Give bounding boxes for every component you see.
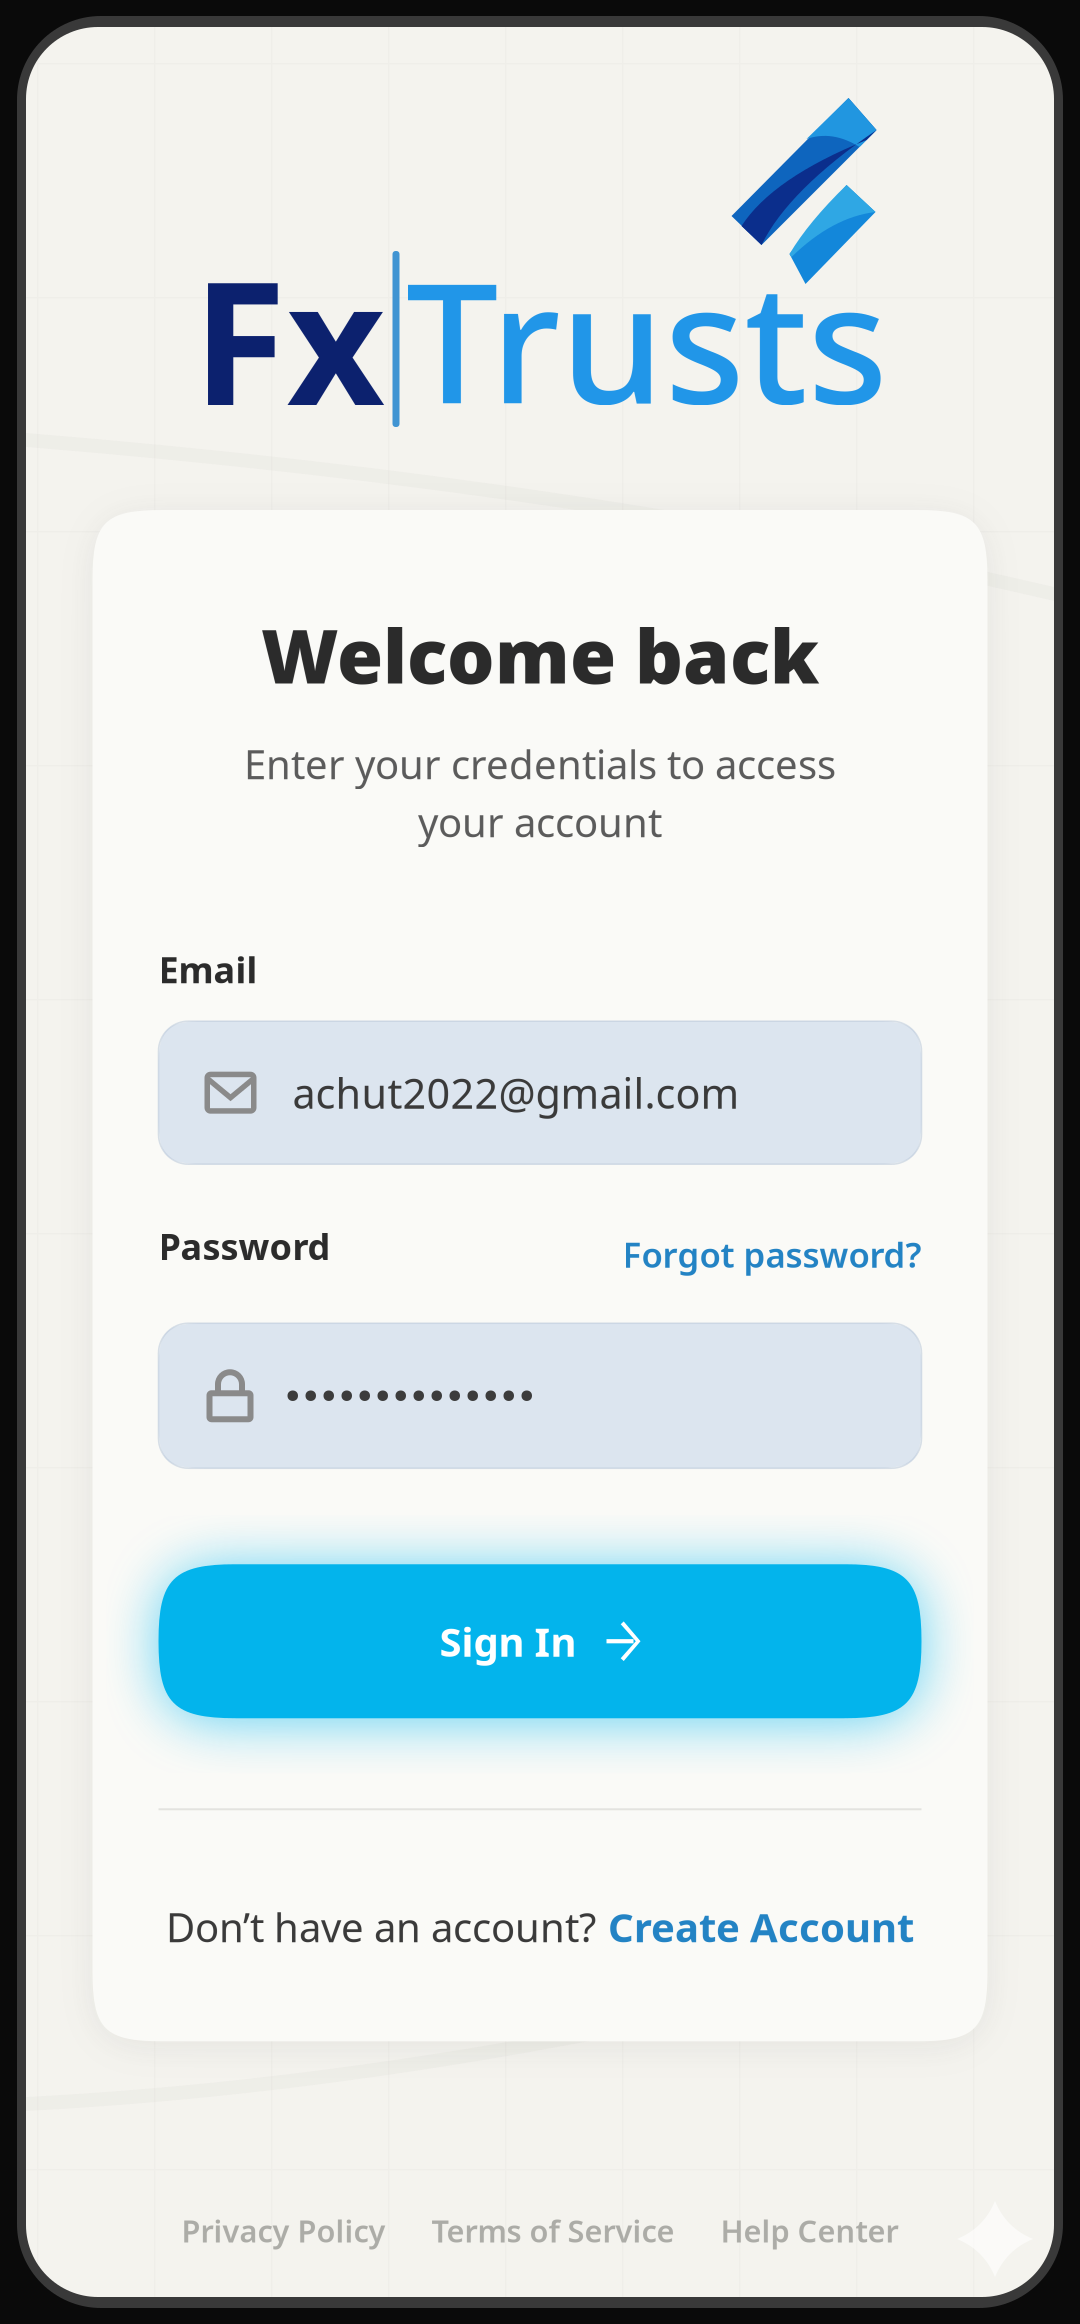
staticText: Welcome back bbox=[261, 605, 819, 704]
button[interactable]: Help Center bbox=[720, 2210, 898, 2251]
staticText: your account bbox=[418, 795, 662, 848]
button[interactable]: Don’t have an account? bbox=[166, 1900, 914, 1953]
staticText: Email bbox=[158, 945, 257, 993]
button[interactable]: Terms of Service bbox=[431, 2210, 674, 2251]
button[interactable]: Sign In bbox=[158, 1564, 921, 1718]
staticText: Privacy Policy bbox=[181, 2210, 385, 2251]
staticText: Forgot password? bbox=[622, 1231, 921, 1277]
staticText: Trusts bbox=[405, 229, 887, 449]
staticText: Don’t have an account? bbox=[166, 1900, 596, 1953]
button[interactable]: Forgot password? bbox=[622, 1222, 921, 1277]
staticText: Password bbox=[158, 1222, 330, 1270]
staticText: Create Account bbox=[608, 1900, 914, 1953]
staticText: Help Center bbox=[720, 2210, 898, 2251]
staticText: Fx bbox=[192, 226, 385, 452]
staticText: Enter your credentials to access bbox=[244, 737, 836, 790]
button[interactable]: achut2022@gmail.com bbox=[158, 1021, 921, 1164]
staticText: Sign In bbox=[439, 1615, 576, 1668]
button[interactable]: Privacy Policy bbox=[181, 2210, 385, 2251]
staticText: Terms of Service bbox=[431, 2210, 674, 2251]
staticText: achut2022@gmail.com bbox=[292, 1065, 739, 1120]
button[interactable]: Password field bbox=[158, 1323, 921, 1468]
